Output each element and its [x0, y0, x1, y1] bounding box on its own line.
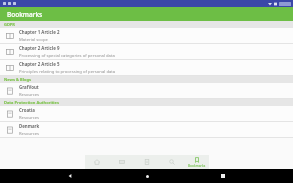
- staticText: Chapter 1 Article 2: [19, 29, 60, 35]
- button[interactable]: Chapter 2 Article 5: [0, 60, 293, 76]
- staticText: Resources: [19, 131, 40, 137]
- button[interactable]: Bookmarks: [0, 7, 293, 21]
- button[interactable]: Articles: [134, 155, 159, 169]
- staticText: Chapter 2 Article 9: [19, 45, 60, 51]
- button[interactable]: Home: [141, 170, 153, 182]
- button[interactable]: Chapters: [109, 155, 134, 169]
- staticText: Data Protection Authorities: [4, 100, 59, 105]
- staticText: Chapter 2 Article 5: [19, 61, 60, 67]
- staticText: Croatia: [19, 107, 35, 113]
- button[interactable]: Back: [64, 170, 76, 182]
- staticText: Bookmarks: [7, 10, 43, 19]
- button[interactable]: Search: [159, 155, 184, 169]
- button[interactable]: Chapter 1 Article 2: [0, 28, 293, 44]
- button[interactable]: Home: [85, 155, 109, 169]
- staticText: Resources: [19, 92, 40, 98]
- staticText: GDPR: [4, 22, 15, 27]
- staticText: News & Blogs: [4, 77, 31, 82]
- staticText: Resources: [19, 115, 40, 121]
- button[interactable]: GrafVout: [0, 83, 293, 99]
- staticText: Processing of special categories of pers…: [19, 53, 115, 59]
- button[interactable]: Bookmarks: [184, 155, 209, 169]
- staticText: Bookmarks: [188, 164, 206, 168]
- button[interactable]: Recents: [217, 170, 229, 182]
- staticText: Principles relating to processing of per…: [19, 69, 116, 75]
- staticText: GrafVout: [19, 84, 39, 90]
- button[interactable]: Chapter 2 Article 9: [0, 44, 293, 60]
- button[interactable]: Denmark: [0, 122, 293, 138]
- button[interactable]: Croatia: [0, 106, 293, 122]
- staticText: Denmark: [19, 123, 40, 129]
- staticText: Material scope: [19, 37, 48, 43]
